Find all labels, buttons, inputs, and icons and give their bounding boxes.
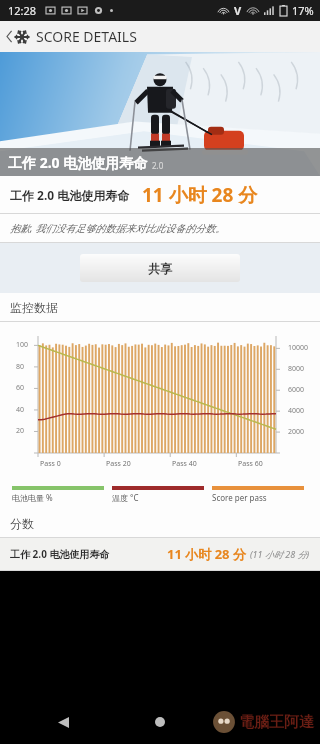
staticText: Pass 0: [40, 459, 61, 469]
staticText: 监控数据: [10, 300, 58, 315]
button[interactable]: Back: [3, 27, 140, 46]
staticText: 6000: [288, 385, 305, 395]
staticText: 工作 2.0 电池使用寿命: [8, 153, 148, 172]
staticText: 工作 2.0 电池使用寿命: [10, 187, 130, 203]
staticText: 17%: [292, 3, 314, 18]
staticText: (11 小时 28 分): [250, 548, 310, 560]
staticText: 40: [16, 405, 25, 415]
staticText: 12:28: [8, 3, 37, 18]
staticText: 10000: [288, 343, 309, 353]
staticText: 電腦王阿達: [239, 713, 314, 732]
staticText: V: [234, 3, 242, 18]
button[interactable]: 工作 2.0 电池使用寿命: [0, 176, 320, 213]
staticText: 60: [16, 383, 25, 393]
staticText: 分数: [10, 516, 34, 531]
staticText: Pass 60: [238, 459, 263, 469]
button[interactable]: 工作 2.0 电池使用寿命: [0, 538, 320, 570]
staticText: 20: [16, 426, 25, 436]
staticText: 11 小时 28 分: [142, 182, 258, 208]
staticText: SCORE DETAILS: [36, 27, 137, 46]
staticText: 温度 °C: [112, 492, 139, 503]
button[interactable]: Home: [147, 709, 173, 735]
staticText: 工作 2.0 电池使用寿命: [10, 547, 110, 561]
staticText: 共享: [148, 261, 172, 276]
staticText: 抱歉, 我们没有足够的数据来对比此设备的分数。: [10, 221, 226, 235]
staticText: Pass 40: [172, 459, 197, 469]
button[interactable]: 共享: [80, 254, 240, 282]
staticText: 2000: [288, 427, 305, 437]
staticText: 电池电量 %: [12, 492, 53, 503]
staticText: 11 小时 28 分: [167, 545, 246, 563]
staticText: 80: [16, 362, 25, 372]
staticText: Score per pass: [212, 492, 267, 503]
staticText: 2.0: [152, 160, 164, 171]
staticText: 4000: [288, 406, 305, 416]
button[interactable]: Back: [50, 709, 76, 735]
staticText: 100: [16, 340, 29, 350]
staticText: Pass 20: [106, 459, 131, 469]
staticText: 8000: [288, 364, 305, 374]
